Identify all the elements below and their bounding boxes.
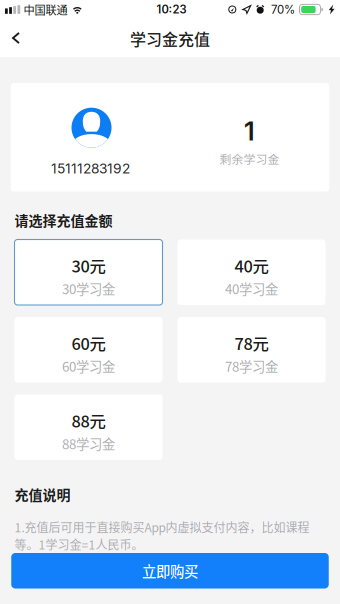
staticText: 78学习金 <box>225 356 278 375</box>
staticText: 40元 <box>234 253 268 277</box>
staticText: 78元 <box>234 331 268 355</box>
staticText: 30学习金 <box>62 279 115 298</box>
button[interactable]: Back <box>0 19 32 57</box>
staticText: 60学习金 <box>62 356 115 375</box>
staticText: 40学习金 <box>225 279 278 298</box>
staticText: 15111283192 <box>51 160 130 177</box>
button[interactable]: 立即购买 <box>11 553 329 588</box>
staticText: 88学习金 <box>62 434 115 453</box>
staticText: 剩余学习金 <box>219 150 279 167</box>
button[interactable]: 78元 <box>177 317 325 382</box>
staticText: 10:23 <box>156 3 186 16</box>
staticText: 1.充值后可用于直接购买App内虚拟支付内容，比如课程等。1学习金=1人民币。 <box>14 518 309 553</box>
staticText: 1 <box>244 115 255 147</box>
button[interactable]: 30元 <box>14 239 162 305</box>
staticText: 充值说明 <box>14 484 70 504</box>
staticText: 88元 <box>71 408 105 432</box>
button[interactable]: 40元 <box>177 239 325 305</box>
staticText: 60元 <box>71 331 105 355</box>
staticText: 70% <box>271 3 295 16</box>
staticText: 请选择充值金额 <box>14 210 112 230</box>
staticText: 立即购买 <box>142 560 198 581</box>
button[interactable]: 60元 <box>14 317 162 382</box>
staticText: 学习金充值 <box>130 27 210 50</box>
staticText: 中国联通 <box>23 1 67 18</box>
staticText: 30元 <box>71 253 105 277</box>
button[interactable]: 88元 <box>14 394 162 460</box>
